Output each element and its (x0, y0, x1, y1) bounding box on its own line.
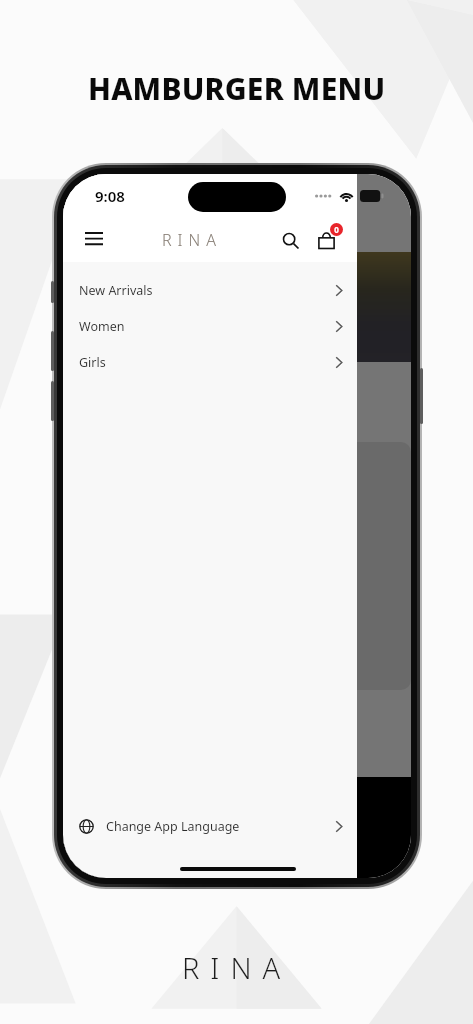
staticText: RINA (182, 948, 292, 987)
staticText: HAMBURGER MENU (88, 68, 386, 109)
staticText: Women (79, 318, 125, 335)
button[interactable]: Change App Language (63, 806, 357, 846)
staticText: Change App Language (106, 818, 240, 835)
staticText: New Arrivals (79, 282, 153, 299)
button[interactable]: Search (275, 225, 305, 255)
staticText: RINA (162, 229, 222, 251)
button[interactable]: New Arrivals (63, 272, 357, 308)
staticText: Girls (79, 354, 106, 371)
staticText: Rina is a brand of (79, 829, 169, 844)
button[interactable]: Menu (79, 225, 109, 255)
button[interactable]: Cart (311, 225, 341, 255)
staticText: 0 (334, 224, 339, 235)
button[interactable]: Girls (63, 344, 357, 380)
staticText: 9:08 (95, 186, 125, 206)
button[interactable]: Women (63, 308, 357, 344)
